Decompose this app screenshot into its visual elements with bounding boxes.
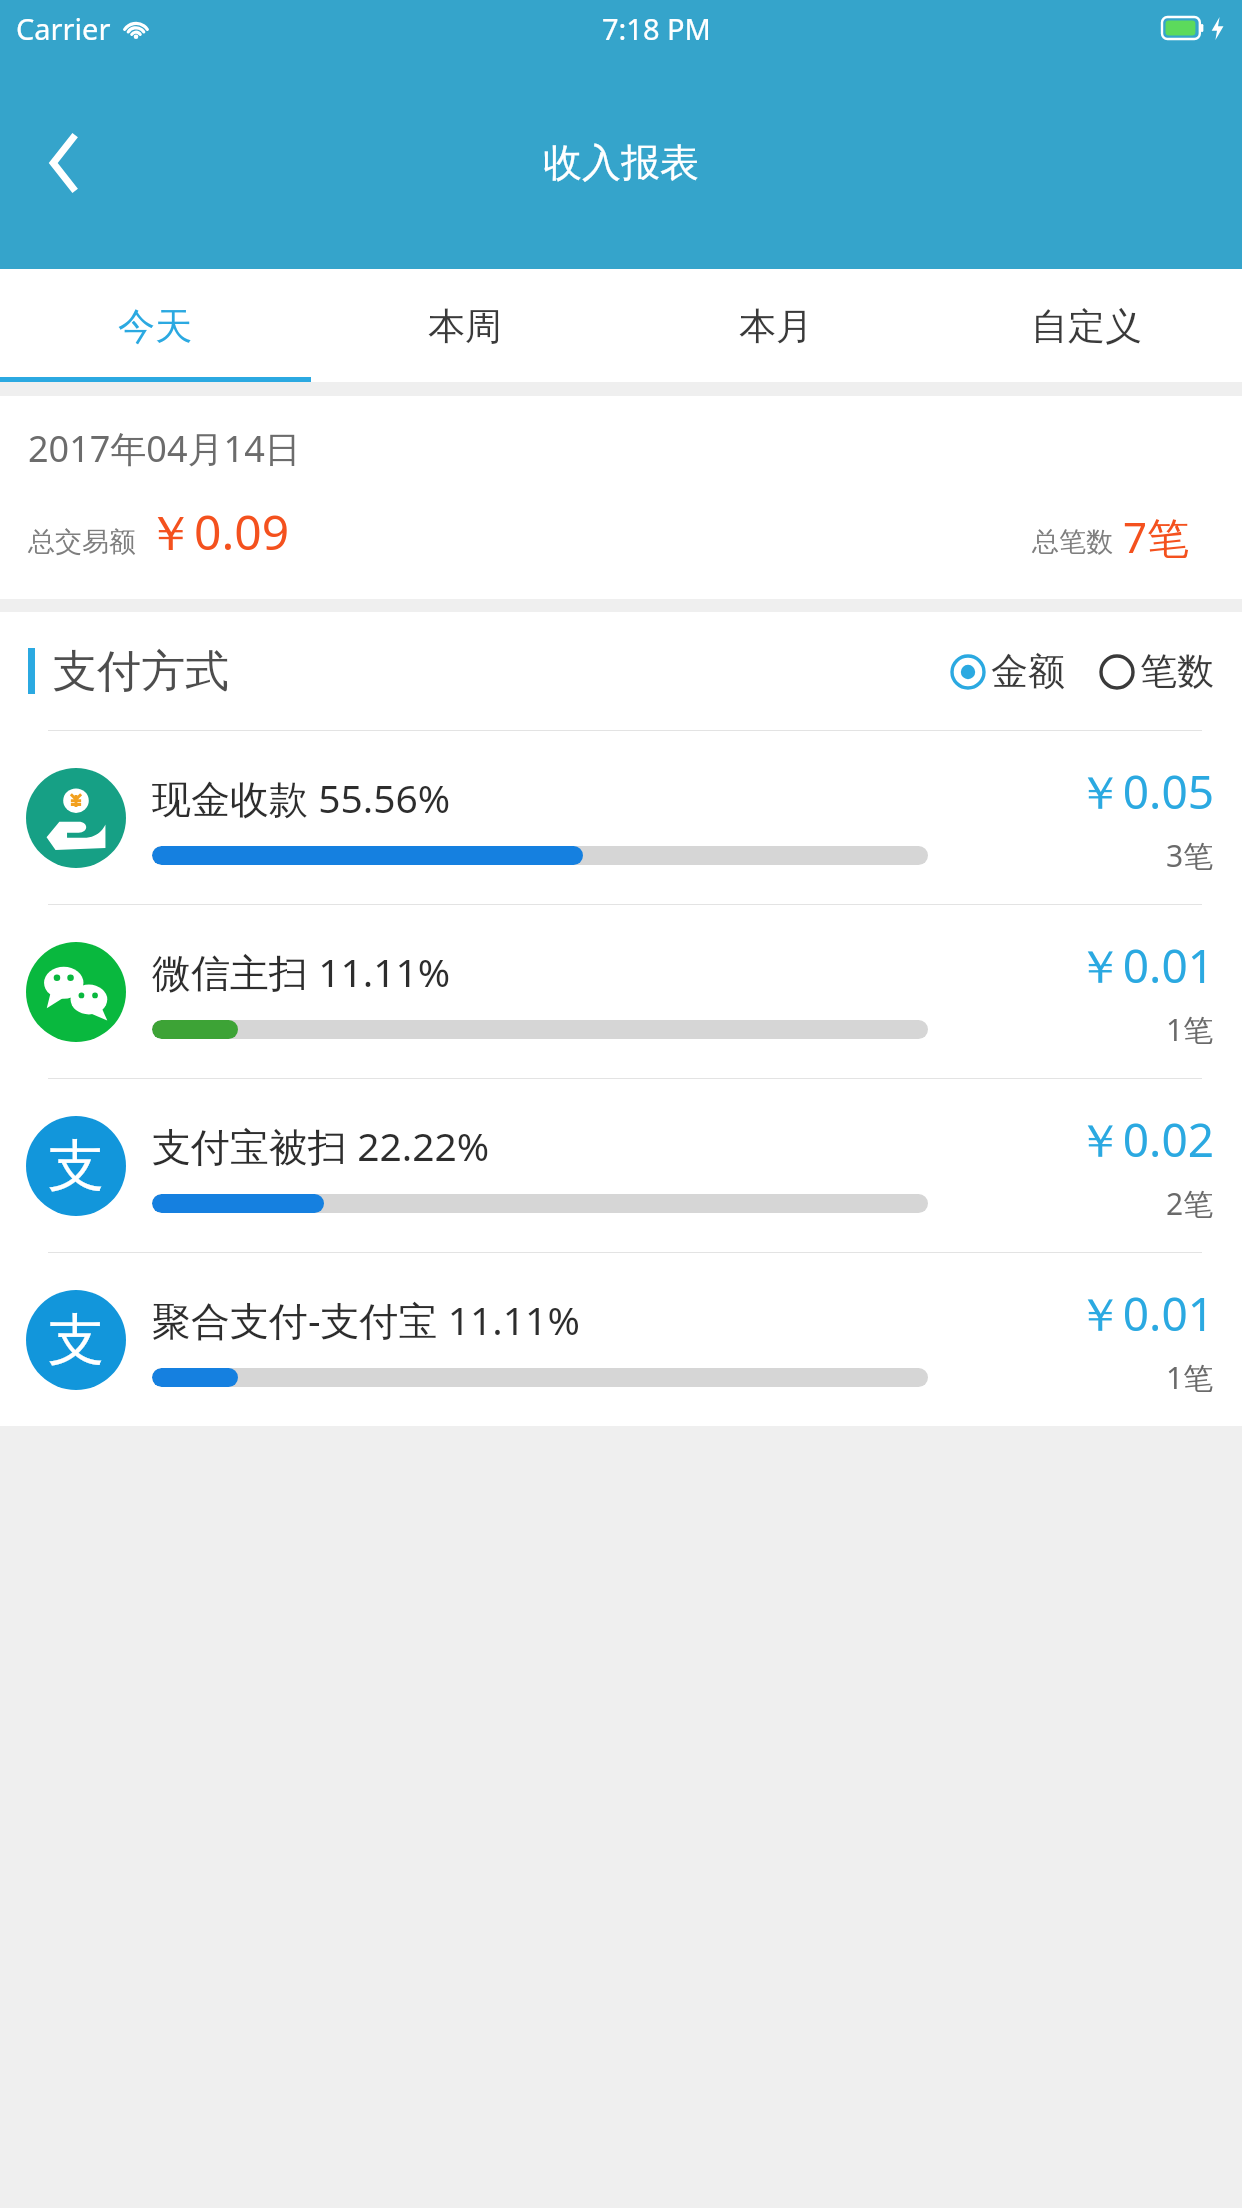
staticText: 1笔 <box>1166 1009 1214 1050</box>
staticText: 现金收款 55.56% <box>152 771 451 824</box>
staticText: 支付方式 <box>53 644 229 699</box>
staticText: 支 <box>48 1131 104 1202</box>
staticText: Carrier <box>16 9 111 48</box>
staticText: 总交易额 <box>28 525 136 559</box>
staticText: 本月 <box>739 303 813 350</box>
button[interactable]: 今天 <box>0 269 310 383</box>
staticText: 聚合支付-支付宝 11.11% <box>152 1293 580 1346</box>
staticText: 7:18 PM <box>602 9 711 48</box>
button[interactable]: Back <box>0 56 128 269</box>
staticText: ￥0.05 <box>1076 760 1214 823</box>
staticText: 3笔 <box>1166 835 1214 876</box>
staticText: 支 <box>48 1305 104 1376</box>
button[interactable]: 支 <box>0 1253 1242 1426</box>
button[interactable]: 自定义 <box>931 269 1242 383</box>
staticText: 总笔数 <box>1032 525 1113 559</box>
button[interactable]: 本周 <box>310 269 620 383</box>
staticText: 支付宝被扫 22.22% <box>152 1119 490 1172</box>
button[interactable]: 笔数 <box>1099 640 1214 703</box>
staticText: 7笔 <box>1123 508 1190 565</box>
staticText: 本周 <box>428 303 502 350</box>
staticText: 金额 <box>991 648 1065 695</box>
button[interactable]: 本月 <box>620 269 931 383</box>
button[interactable]: 金额 <box>950 640 1065 703</box>
staticText: 笔数 <box>1140 648 1214 695</box>
staticText: 1笔 <box>1166 1357 1214 1398</box>
staticText: 微信主扫 11.11% <box>152 945 451 998</box>
staticText: 收入报表 <box>543 138 699 187</box>
staticText: ￥0.01 <box>1076 934 1214 997</box>
staticText: ￥0.09 <box>146 499 290 565</box>
staticText: ￥0.01 <box>1076 1282 1214 1345</box>
staticText: 2笔 <box>1166 1183 1214 1224</box>
staticText: 今天 <box>118 303 192 350</box>
staticText: ￥0.02 <box>1076 1108 1214 1171</box>
button[interactable]: 现金收款 55.56% <box>0 731 1242 904</box>
button[interactable]: 微信主扫 11.11% <box>0 905 1242 1078</box>
staticText: 2017年04月14日 <box>28 424 301 473</box>
staticText: 自定义 <box>1031 303 1142 350</box>
button[interactable]: 支 <box>0 1079 1242 1252</box>
